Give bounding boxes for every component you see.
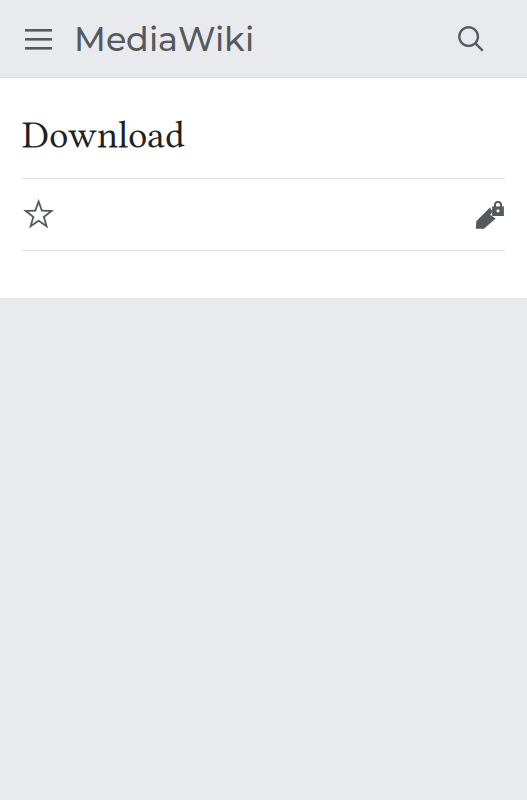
button[interactable]: Open main menu <box>0 0 65 78</box>
staticText: MediaWiki <box>74 19 254 59</box>
button[interactable]: Search <box>438 0 527 78</box>
button[interactable]: Watch this page <box>22 179 62 249</box>
button[interactable]: MediaWiki home <box>65 0 266 78</box>
button[interactable]: Edit protected page <box>465 179 505 249</box>
staticText: Download <box>22 113 185 157</box>
